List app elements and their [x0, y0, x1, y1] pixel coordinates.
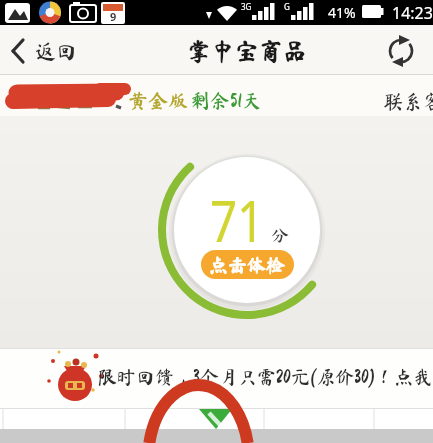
- staticText: 3G: [241, 1, 252, 11]
- button[interactable]: 联系客服: [383, 87, 433, 115]
- staticText: 掌中宝商品: [187, 39, 307, 63]
- button[interactable]: [0, 349, 433, 408]
- staticText: 分: [271, 226, 289, 244]
- button[interactable]: [384, 34, 420, 68]
- button[interactable]: 返回: [30, 36, 82, 66]
- staticText: 剩余51天: [190, 90, 262, 110]
- staticText: 41%: [328, 3, 356, 21]
- staticText: G: [284, 1, 290, 11]
- button[interactable]: 点击体检: [201, 250, 294, 279]
- staticText: 限时回馈，3个月只需20元(原价30)！点我领取: [98, 367, 433, 386]
- staticText: 点击体检: [209, 255, 286, 274]
- staticText: 黄金版: [128, 90, 188, 110]
- staticText: 返回: [35, 41, 77, 62]
- staticText: 联系客服: [383, 91, 433, 111]
- staticText: 71: [210, 182, 265, 242]
- staticText: 9: [110, 9, 117, 23]
- button[interactable]: [125, 409, 264, 429]
- staticText: 14:23: [392, 2, 433, 22]
